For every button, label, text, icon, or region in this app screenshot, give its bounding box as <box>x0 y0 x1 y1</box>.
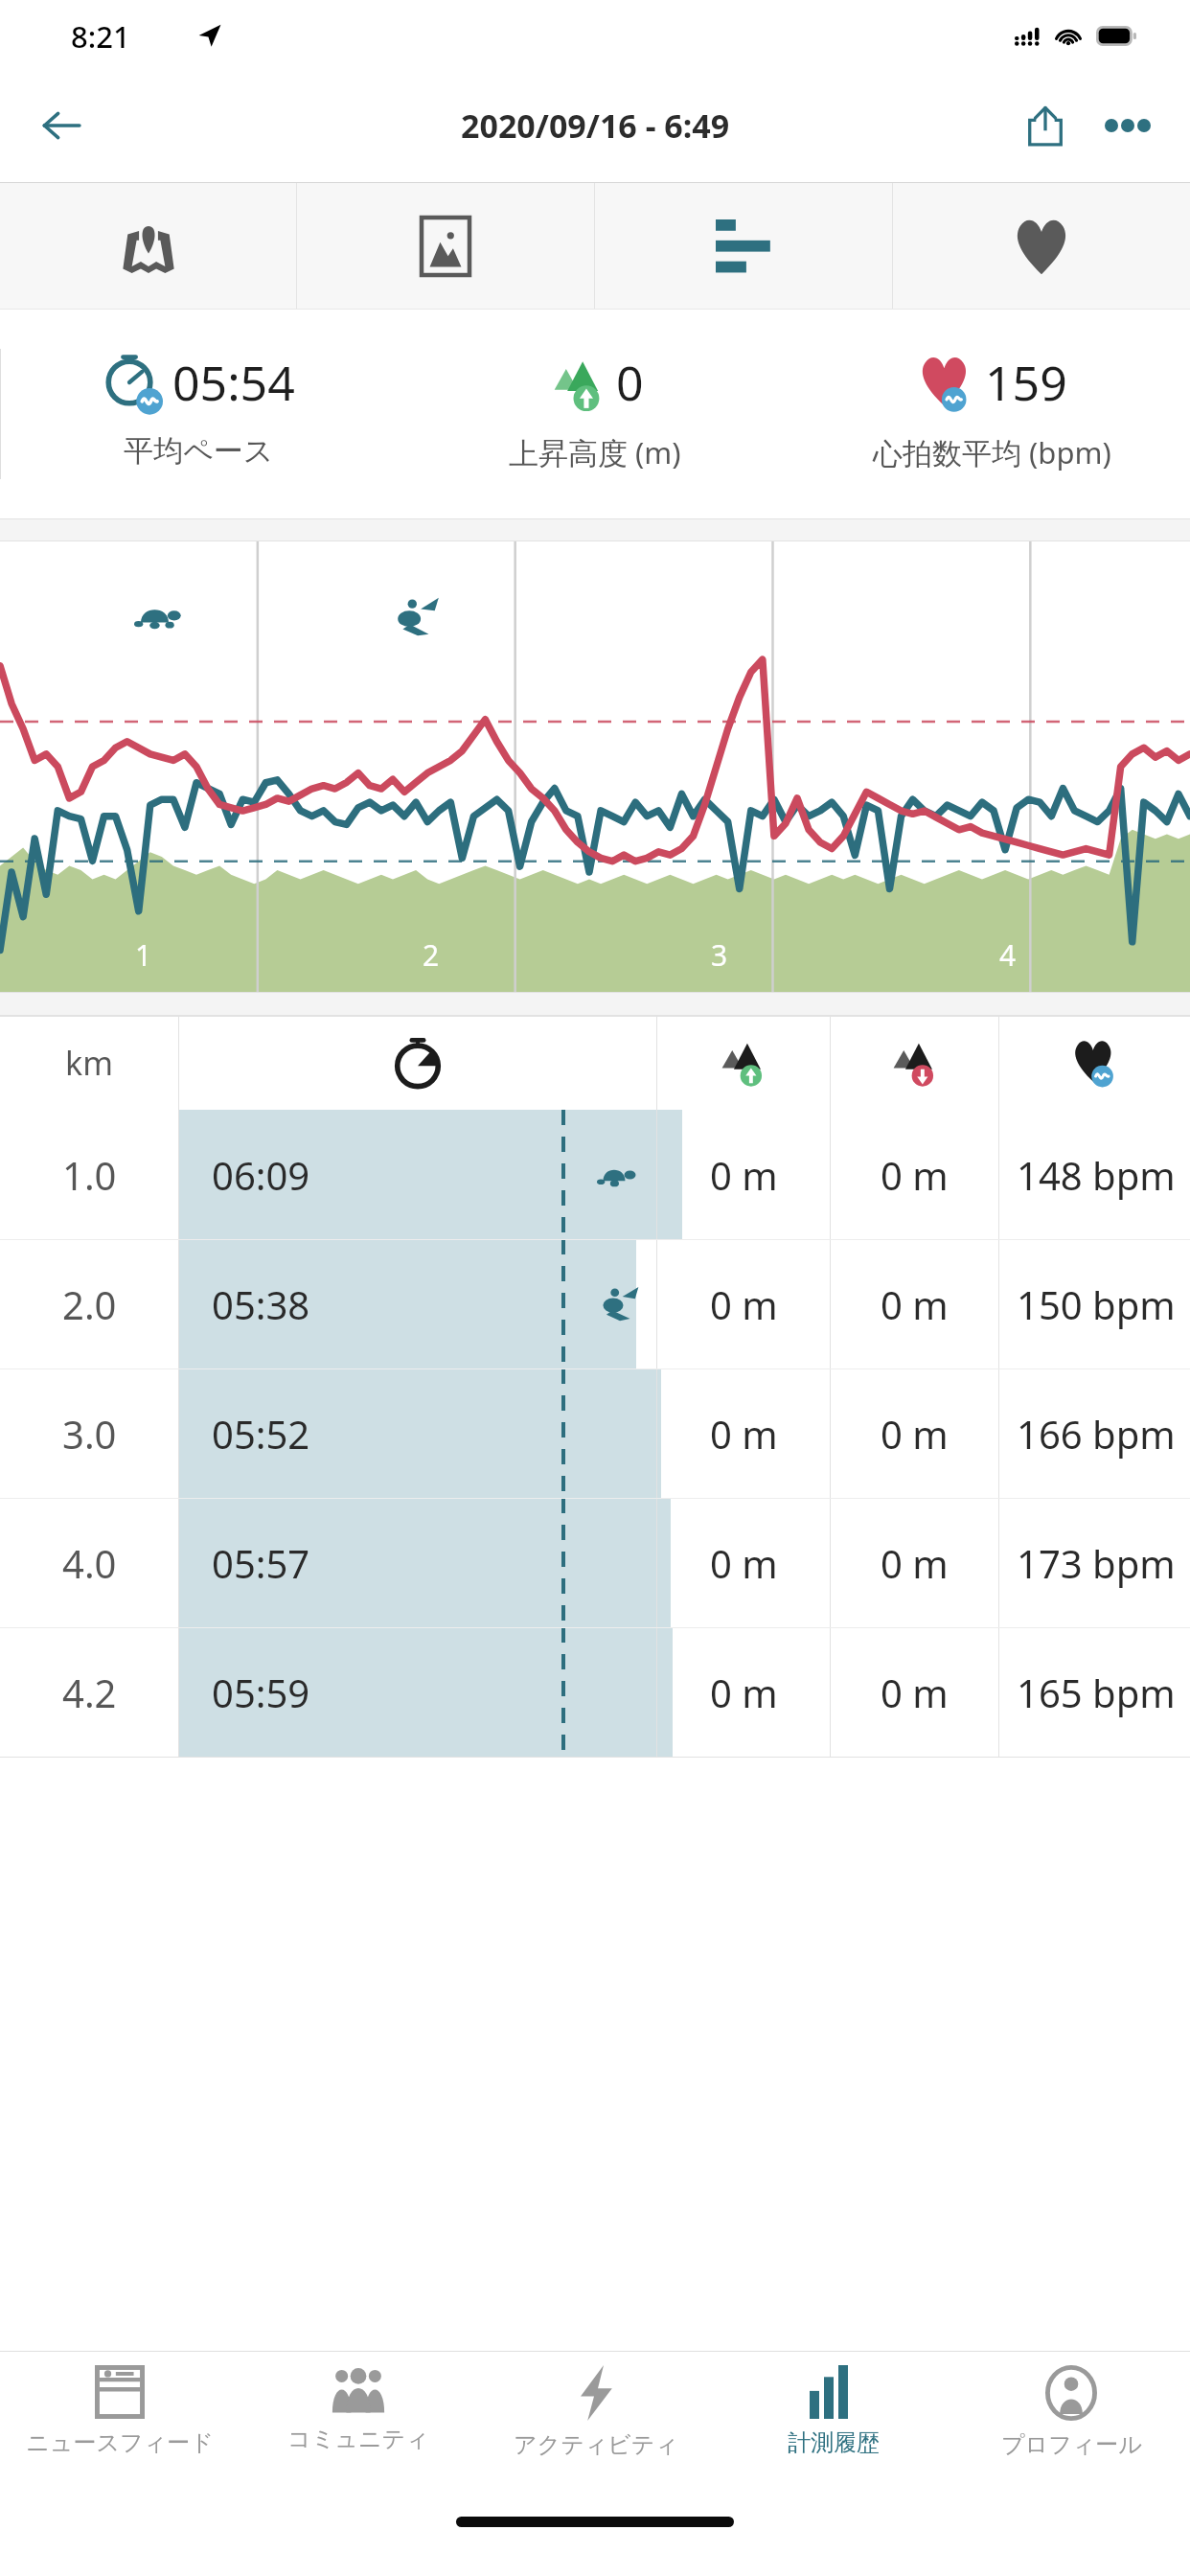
staticText: 148 bpm <box>1017 1149 1176 1201</box>
staticText: km <box>65 1041 113 1085</box>
button[interactable]: 4.0 <box>0 1498 1190 1627</box>
staticText: 3 <box>711 935 728 975</box>
staticText: 2020/09/16 - 6:49 <box>461 103 730 148</box>
staticText: 4.0 <box>62 1537 117 1589</box>
staticText: 150 bpm <box>1017 1278 1176 1330</box>
staticText: 166 bpm <box>1017 1408 1176 1460</box>
button[interactable]: 計測履歴 <box>715 2352 952 2495</box>
button[interactable]: ニュースフィード <box>0 2352 239 2495</box>
staticText: 06:09 <box>212 1149 310 1201</box>
button[interactable]: アクティビティ <box>477 2352 715 2495</box>
button[interactable]: Share <box>1004 84 1087 167</box>
staticText: 0 <box>616 350 644 415</box>
staticText: コミュニティ <box>287 2425 429 2453</box>
button[interactable]: Charts <box>595 183 892 309</box>
button[interactable]: Map <box>0 183 296 309</box>
staticText: アクティビティ <box>514 2430 678 2459</box>
staticText: 平均ペース <box>124 432 274 470</box>
button[interactable]: 3.0 <box>0 1368 1190 1498</box>
staticText: 165 bpm <box>1017 1667 1176 1718</box>
staticText: 計測履歴 <box>788 2428 880 2457</box>
staticText: 2.0 <box>62 1278 117 1330</box>
staticText: 0 m <box>881 1537 949 1589</box>
staticText: 0 m <box>881 1408 949 1460</box>
staticText: 上昇高度 (m) <box>509 432 681 472</box>
staticText: 0 m <box>710 1408 778 1460</box>
staticText: 心拍数平均 (bpm) <box>873 432 1111 472</box>
staticText: 1.0 <box>62 1149 117 1201</box>
staticText: 173 bpm <box>1017 1537 1176 1589</box>
button[interactable]: コミュニティ <box>239 2352 477 2495</box>
staticText: 3.0 <box>62 1408 117 1460</box>
staticText: 05:38 <box>212 1278 310 1330</box>
staticText: 4.2 <box>62 1667 117 1718</box>
button[interactable]: 1.0 <box>0 1110 1190 1239</box>
staticText: 0 m <box>881 1149 949 1201</box>
button[interactable]: Back <box>23 87 100 164</box>
button[interactable]: More options <box>1087 84 1169 167</box>
button[interactable]: Photos <box>297 183 594 309</box>
staticText: 0 m <box>881 1667 949 1718</box>
staticText: 0 m <box>881 1278 949 1330</box>
button[interactable]: プロフィール <box>952 2352 1190 2495</box>
staticText: ニュースフィード <box>26 2428 214 2457</box>
staticText: 8:21 <box>71 16 130 57</box>
staticText: 4 <box>999 935 1017 975</box>
staticText: 0 m <box>710 1537 778 1589</box>
staticText: プロフィール <box>1001 2430 1142 2459</box>
staticText: 05:59 <box>212 1667 310 1718</box>
staticText: 0 m <box>710 1149 778 1201</box>
staticText: 05:57 <box>212 1537 310 1589</box>
staticText: 0 m <box>710 1667 778 1718</box>
staticText: 2 <box>423 935 440 975</box>
staticText: 05:54 <box>172 350 295 415</box>
staticText: 05:52 <box>212 1408 310 1460</box>
button[interactable]: Heart rate <box>893 183 1190 309</box>
staticText: 0 m <box>710 1278 778 1330</box>
button[interactable]: 4.2 <box>0 1627 1190 1757</box>
staticText: 159 <box>985 350 1067 415</box>
staticText: 1 <box>135 935 152 975</box>
button[interactable]: 2.0 <box>0 1239 1190 1368</box>
